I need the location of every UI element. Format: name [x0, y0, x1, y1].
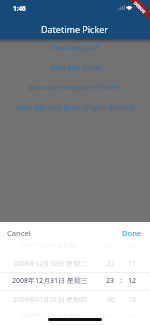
staticText: show time picker: [50, 63, 101, 72]
staticText: 00: [107, 295, 115, 304]
button[interactable]: show date time picker (English-America): [0, 100, 150, 114]
button[interactable]: 2009年01月02日 星期五: [0, 309, 150, 321]
staticText: show date time picker (Chinese): [28, 83, 122, 92]
button[interactable]: 2009年01月01日 星期四: [0, 293, 150, 305]
staticText: 1:46: [13, 4, 26, 13]
staticText: show date time picker (English-America): [16, 103, 135, 112]
staticText: Done: [122, 228, 142, 238]
staticText: Cancel: [7, 228, 31, 238]
staticText: 2009年01月02日 星期五: [20, 311, 80, 319]
staticText: show date picker: [50, 43, 101, 52]
button[interactable]: Cancel: [0, 224, 38, 242]
button[interactable]: Done: [115, 224, 150, 242]
staticText: Datetime Picker: [41, 23, 109, 35]
staticText: 2008年12月31日 星期三: [12, 276, 88, 286]
button[interactable]: show time picker: [0, 60, 150, 74]
button[interactable]: 2008年12月30日 星期二: [0, 257, 150, 269]
button[interactable]: show date time picker (Chinese): [0, 80, 150, 94]
staticText: DEBUG: [132, 1, 147, 15]
staticText: :: [120, 276, 122, 286]
staticText: 11: [128, 259, 136, 268]
staticText: 23: [106, 276, 115, 286]
staticText: 2008年12月30日 星期二: [13, 259, 87, 268]
staticText: 12: [128, 276, 137, 286]
staticText: 10: [129, 242, 136, 249]
staticText: 2007年12月29日 星期六: [20, 241, 80, 249]
staticText: 13: [128, 295, 136, 304]
staticText: 14: [129, 312, 136, 319]
staticText: 22: [107, 259, 115, 268]
button[interactable]: show date picker: [0, 40, 150, 54]
button[interactable]: 2008年12月31日 星期三: [0, 275, 150, 287]
staticText: 2009年01月01日 星期四: [13, 295, 87, 304]
